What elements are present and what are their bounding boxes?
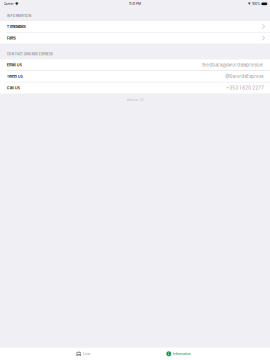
staticText: Email Us [7,63,22,67]
staticText: Tweet Us [7,74,23,79]
staticText: Version 1.4 [126,98,143,102]
staticText: Call Us [7,86,20,90]
button[interactable]: Timetables [0,21,270,32]
button[interactable]: Tweet Us [0,71,270,82]
staticText: Information [173,352,191,356]
staticText: Live [83,352,90,356]
staticText: Timetables [7,24,26,29]
button[interactable]: Live [35,348,131,360]
staticText: INFORMATION [7,14,32,18]
staticText: +353 1 620 2277 [226,85,263,91]
staticText: CONTACT SWORDS EXPRESS [7,52,53,56]
staticText: feedback@swordsexpress.ie [202,62,263,68]
staticText: Fares [7,36,16,40]
button[interactable]: Information [131,348,226,360]
button[interactable]: Fares [0,32,270,43]
staticText: 11:41 PM [129,2,141,6]
staticText: 100% [252,2,260,6]
staticText: Carrier [4,2,14,6]
button[interactable]: Email Us [0,59,270,70]
button[interactable]: Call Us [0,82,270,93]
staticText: @SwordsExpress [225,74,263,79]
